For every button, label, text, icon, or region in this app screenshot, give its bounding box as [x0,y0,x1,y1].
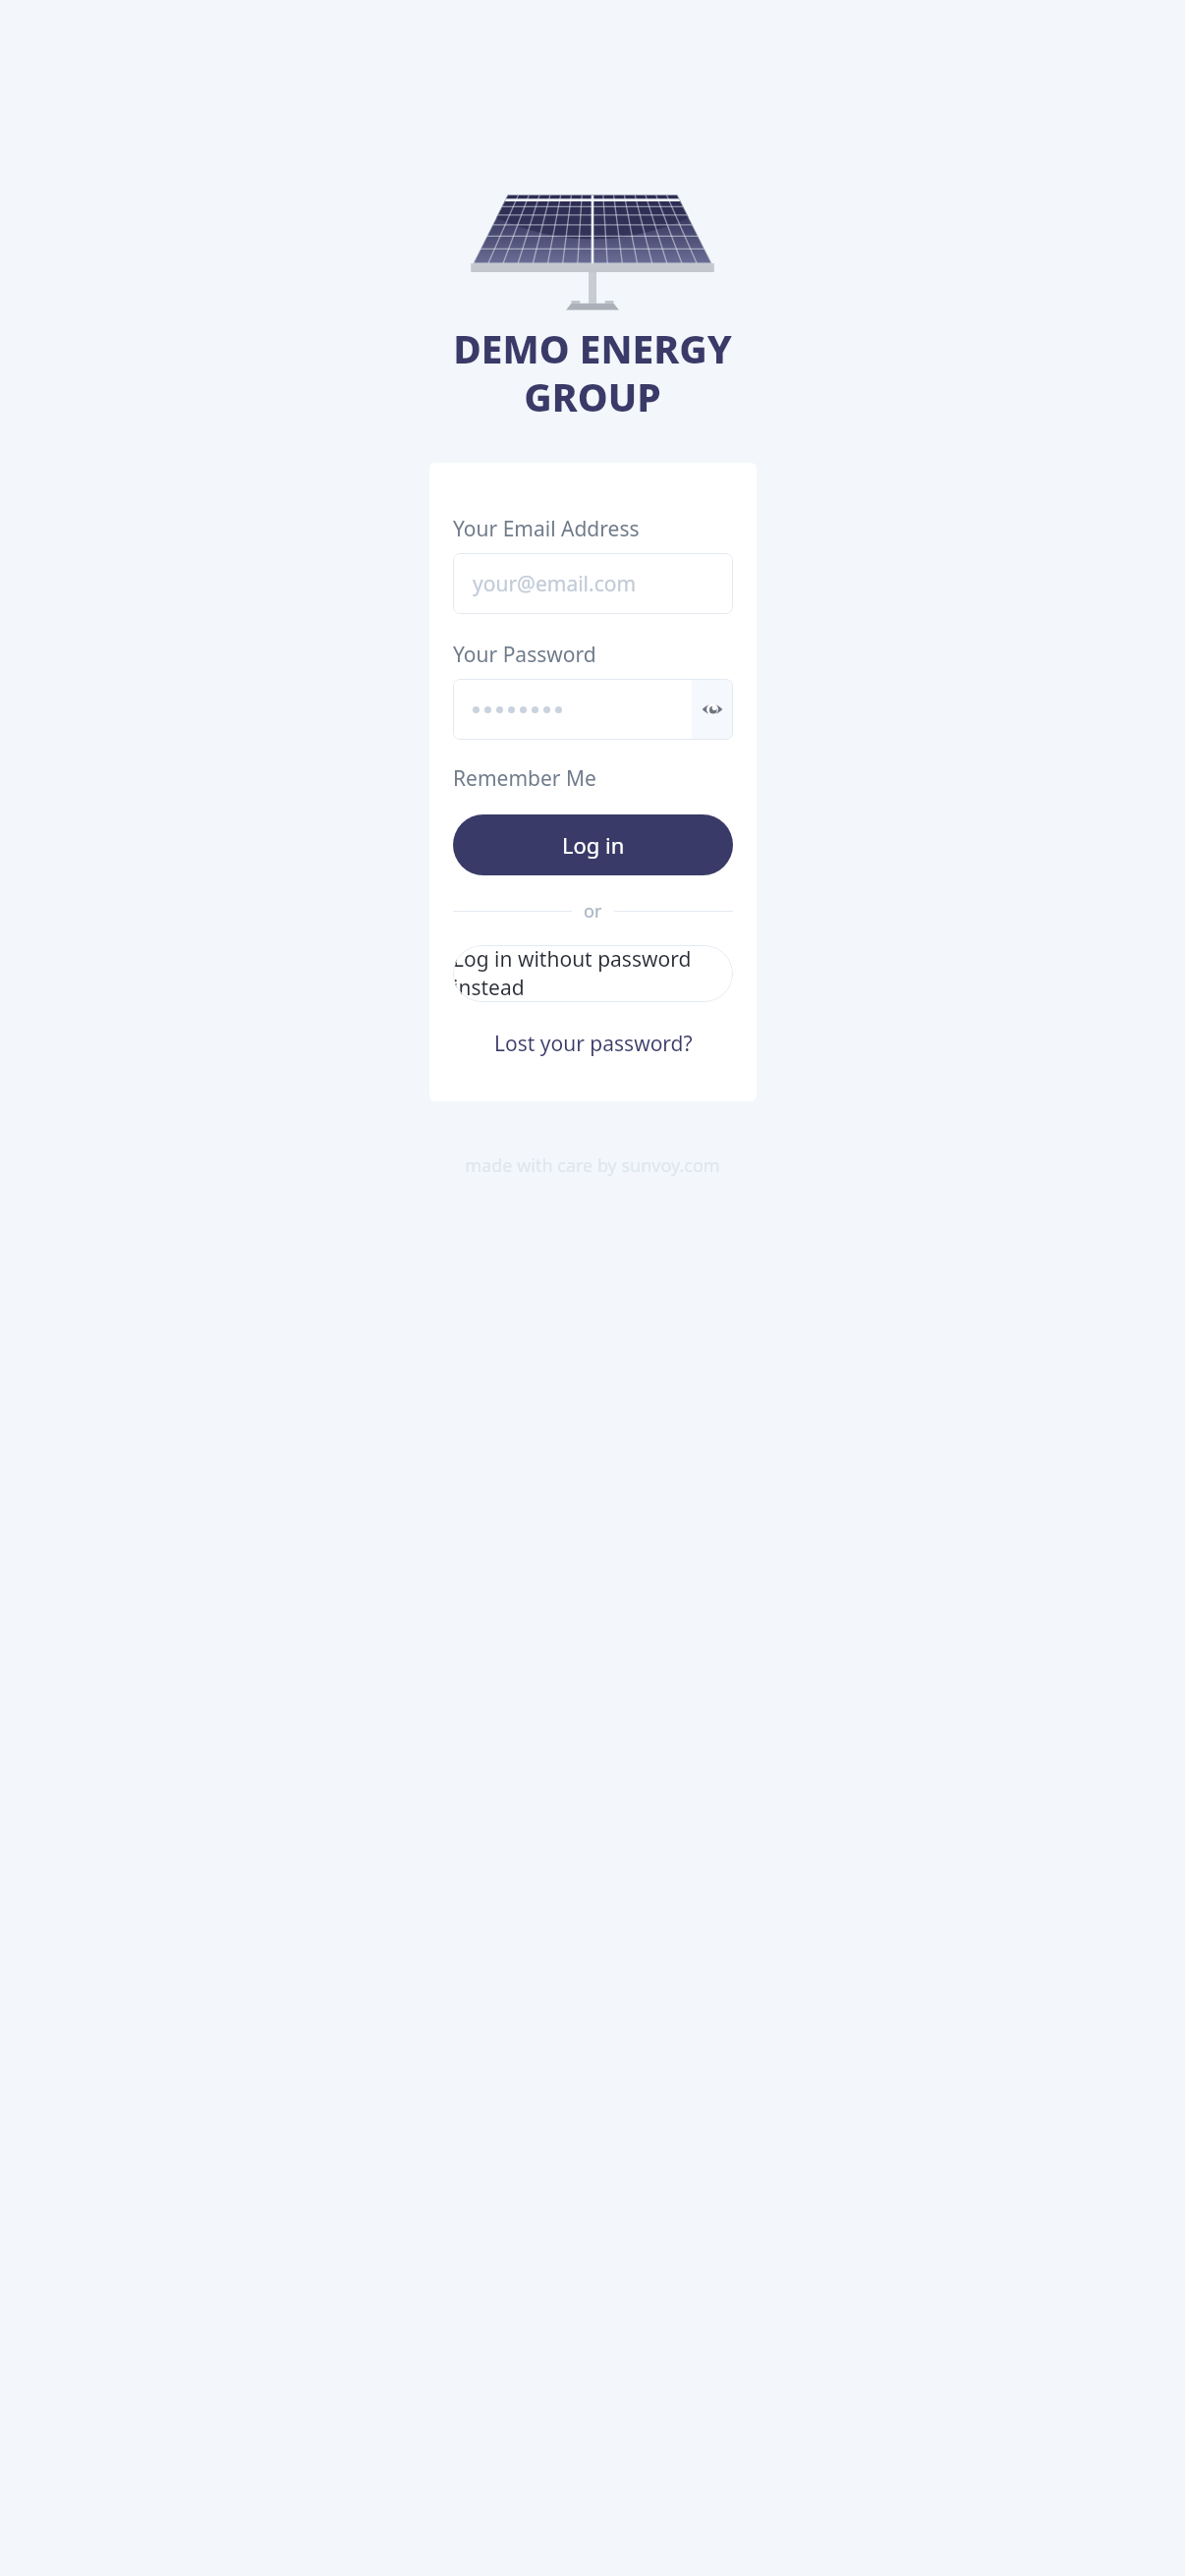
button[interactable]: Lost your password? [490,1026,697,1062]
staticText: made with care by sunvoy.com [0,1153,1185,1178]
button[interactable]: Remember Me [453,764,596,793]
button[interactable]: your@email.com [453,553,733,614]
staticText: Log in [562,830,625,860]
staticText: your@email.com [473,570,637,598]
staticText: Your Email Address [453,515,640,543]
button[interactable]: Show password [692,679,733,740]
staticText: or [584,899,602,924]
button[interactable]: Log in [453,814,733,875]
staticText: Log in without password instead [453,945,733,1002]
staticText: DEMO ENERGY GROUP [0,322,1185,423]
staticText: Your Password [453,641,596,669]
button[interactable]: Log in without password instead [453,945,733,1002]
button[interactable] [453,679,692,740]
